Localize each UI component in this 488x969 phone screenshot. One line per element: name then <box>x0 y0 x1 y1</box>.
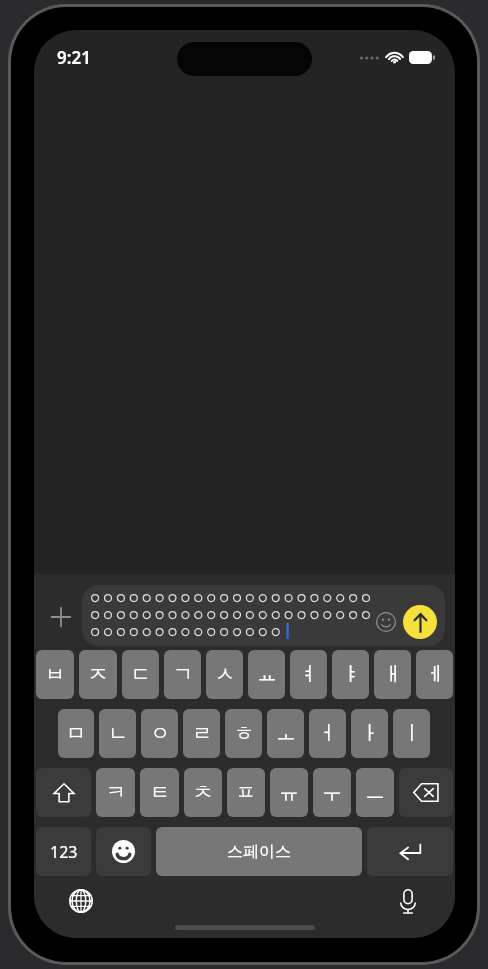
staticText: ㅕ <box>299 662 319 687</box>
button[interactable]: ㅅ <box>206 650 243 699</box>
staticText: ㄷ <box>131 662 151 687</box>
staticText: ㄴ <box>108 721 128 746</box>
button[interactable]: ㅇ <box>141 709 178 758</box>
button[interactable]: ㅎ <box>225 709 262 758</box>
staticText: ㅑ <box>341 662 361 687</box>
staticText: 스페이스 <box>227 842 291 862</box>
staticText: ㅛ <box>257 662 277 687</box>
button[interactable]: Enter <box>367 827 453 876</box>
button[interactable]: ㅊ <box>184 768 222 817</box>
button[interactable]: Change keyboard language <box>64 884 98 918</box>
staticText: ㅎ <box>234 721 254 746</box>
staticText: ㅠ <box>279 780 299 805</box>
button[interactable]: ㅗ <box>267 709 304 758</box>
button[interactable]: ㅍ <box>227 768 265 817</box>
staticText: ㄹ <box>192 721 212 746</box>
staticText: ㅏ <box>360 721 380 746</box>
button[interactable]: Emoji keyboard <box>96 827 151 876</box>
button[interactable]: Shift <box>36 768 91 817</box>
button[interactable]: ㅛ <box>248 650 285 699</box>
staticText: ㅗ <box>276 721 296 746</box>
button[interactable]: ㅔ <box>416 650 453 699</box>
staticText: ㅈ <box>88 662 108 687</box>
staticText: ㅌ <box>150 780 170 805</box>
staticText: ㅂ <box>45 662 65 687</box>
button[interactable]: 123 <box>36 827 91 876</box>
button[interactable]: Add attachment <box>44 600 78 634</box>
staticText: ㅣ <box>402 721 422 746</box>
button[interactable]: Send <box>403 605 437 639</box>
button[interactable]: Emoji <box>373 609 399 635</box>
staticText: ㅜ <box>322 780 342 805</box>
staticText: 123 <box>50 841 78 863</box>
button[interactable]: ㅐ <box>374 650 411 699</box>
button[interactable]: Emoji <box>82 585 445 646</box>
button[interactable]: ㅣ <box>393 709 430 758</box>
button[interactable]: ㅑ <box>332 650 369 699</box>
button[interactable]: Backspace <box>399 768 453 817</box>
staticText: ㅔ <box>425 662 445 687</box>
button[interactable]: ㄹ <box>183 709 220 758</box>
button[interactable]: 스페이스 <box>156 827 362 876</box>
button[interactable]: ㅌ <box>140 768 179 817</box>
staticText: ㅋ <box>106 780 126 805</box>
button[interactable]: ㅋ <box>96 768 135 817</box>
staticText: ㅁ <box>66 721 86 746</box>
button[interactable]: ㄴ <box>99 709 136 758</box>
staticText: ㅐ <box>383 662 403 687</box>
staticText: ㅊ <box>193 780 213 805</box>
button[interactable]: ㄷ <box>122 650 159 699</box>
button[interactable]: Voice input <box>391 884 425 918</box>
staticText: ㅅ <box>215 662 235 687</box>
button[interactable]: ㅡ <box>356 768 394 817</box>
button[interactable]: ㅕ <box>290 650 327 699</box>
staticText: ㅍ <box>236 780 256 805</box>
button[interactable]: ㅂ <box>36 650 74 699</box>
button[interactable]: ㅜ <box>313 768 351 817</box>
button[interactable]: ㄱ <box>164 650 201 699</box>
staticText: ㅇ <box>150 721 170 746</box>
staticText: ㅡ <box>365 780 385 805</box>
staticText: 9:21 <box>57 46 91 69</box>
button[interactable]: ㅏ <box>351 709 388 758</box>
button[interactable]: ㅓ <box>309 709 346 758</box>
button[interactable]: ㅠ <box>270 768 308 817</box>
staticText: ㅓ <box>318 721 338 746</box>
button[interactable]: ㅁ <box>58 709 94 758</box>
staticText: ㄱ <box>173 662 193 687</box>
button[interactable]: ㅈ <box>79 650 117 699</box>
